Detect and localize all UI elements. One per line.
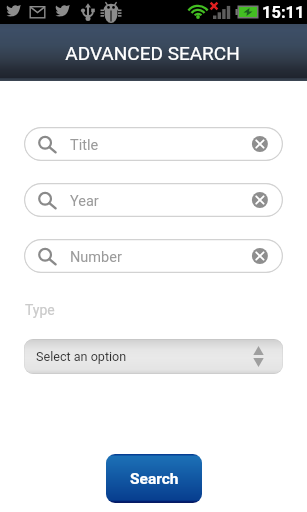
staticText: Select an option — [36, 349, 127, 364]
staticText: Type — [25, 302, 55, 318]
staticText: Number — [70, 249, 122, 266]
staticText: Search — [130, 470, 179, 488]
staticText: ADVANCED SEARCH — [65, 42, 240, 64]
staticText: Title — [70, 137, 99, 154]
button[interactable]: Search — [106, 454, 202, 503]
button[interactable]: Title — [24, 127, 283, 161]
button[interactable]: Year — [24, 183, 283, 217]
button[interactable]: Number — [24, 239, 283, 273]
staticText: 15:11 — [262, 3, 305, 22]
staticText: Year — [70, 193, 99, 210]
button[interactable]: Select an option — [24, 339, 283, 374]
